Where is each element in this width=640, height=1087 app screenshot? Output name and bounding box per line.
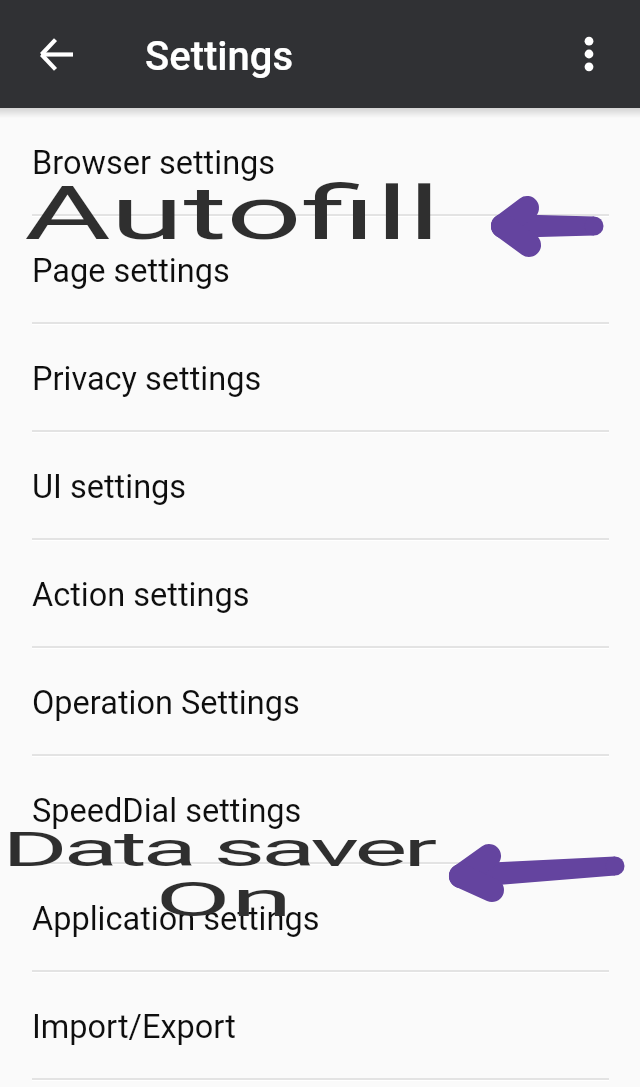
staticText: Browser settings <box>32 144 276 182</box>
staticText: SpeedDial settings <box>32 792 302 830</box>
staticText: Application settings <box>32 900 320 938</box>
button[interactable]: Application settings <box>0 864 640 972</box>
button[interactable]: Privacy settings <box>0 324 640 432</box>
button[interactable]: Operation Settings <box>0 648 640 756</box>
staticText: Import/Export <box>32 1008 236 1046</box>
staticText: Settings <box>145 33 294 80</box>
button[interactable]: Back <box>20 18 92 90</box>
button[interactable]: Import/Export <box>0 972 640 1080</box>
staticText: Privacy settings <box>32 360 262 398</box>
button[interactable]: UI settings <box>0 432 640 540</box>
staticText: Action settings <box>32 576 250 614</box>
button[interactable]: Page settings <box>0 216 640 324</box>
button[interactable]: Browser settings <box>0 108 640 216</box>
staticText: Autofill <box>24 170 442 257</box>
staticText: Data saver <box>2 821 434 878</box>
staticText: UI settings <box>32 468 187 506</box>
button[interactable]: Action settings <box>0 540 640 648</box>
button[interactable]: More options <box>560 25 618 83</box>
staticText: On <box>155 871 293 928</box>
staticText: Page settings <box>32 252 230 290</box>
staticText: Operation Settings <box>32 684 300 722</box>
button[interactable]: SpeedDial settings <box>0 756 640 864</box>
